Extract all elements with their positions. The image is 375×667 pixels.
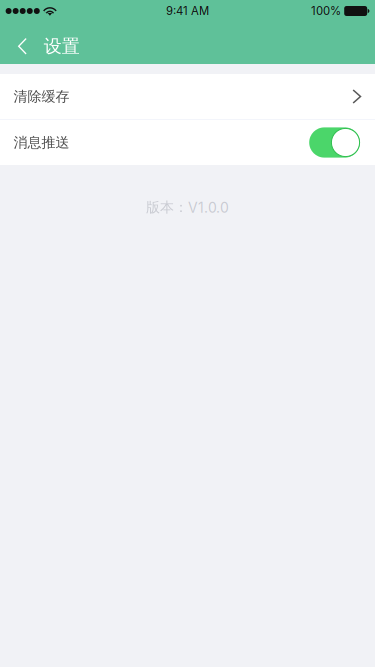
staticText: 9:41 AM [166,4,209,18]
staticText: 版本：V1.0.0 [146,198,229,216]
button[interactable]: 清除缓存 [0,74,375,119]
staticText: 设置 [44,35,80,58]
staticText: 清除缓存 [14,88,70,105]
button[interactable]: 返回 [0,25,44,68]
staticText: 消息推送 [14,134,70,151]
staticText: 100% [311,4,341,18]
button[interactable]: 消息推送 [0,120,375,165]
